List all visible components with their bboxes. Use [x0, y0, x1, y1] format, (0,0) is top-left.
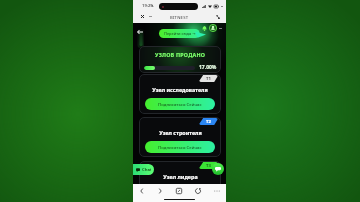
button[interactable]: Перейти сюда → — [159, 29, 200, 38]
staticText: Подписаться Сейчас — [158, 188, 202, 194]
staticText: T3 — [206, 163, 211, 169]
button[interactable]: T1 — [139, 74, 221, 114]
button[interactable]: Подписаться Сейчас — [145, 141, 215, 153]
staticText: Узел исследователя — [152, 86, 208, 93]
button[interactable]: Tabs — [169, 184, 188, 197]
staticText: Перейти сюда → — [164, 31, 196, 36]
staticText: УЗЛОВ ПРОДАНО — [155, 51, 206, 58]
button[interactable]: Back — [134, 26, 145, 37]
staticText: T2 — [206, 119, 211, 125]
button[interactable]: Share — [213, 12, 222, 21]
button[interactable]: Close — [138, 12, 147, 21]
button[interactable]: Back — [146, 12, 155, 21]
button[interactable]: Open chat — [212, 163, 224, 175]
staticText: Chat — [142, 167, 151, 173]
button[interactable]: T2 — [139, 117, 221, 157]
button[interactable]: Forward — [151, 184, 169, 197]
button[interactable]: Profile — [208, 23, 218, 33]
staticText: 19:29 — [142, 3, 153, 9]
button[interactable]: More — [207, 184, 226, 197]
staticText: T1 — [206, 76, 211, 82]
button[interactable]: Подписаться Сейчас — [145, 185, 215, 197]
button[interactable]: Notifications — [200, 24, 209, 33]
staticText: Подписаться Сейчас — [158, 101, 202, 107]
button[interactable]: T3 — [139, 161, 221, 201]
button[interactable]: Reload — [188, 184, 207, 197]
button[interactable]: Back — [133, 184, 151, 197]
button[interactable]: Подписаться Сейчас — [145, 98, 215, 110]
staticText: Узел строителя — [159, 129, 202, 136]
button[interactable]: Chat — [133, 164, 154, 175]
staticText: Подписаться Сейчас — [158, 144, 202, 150]
staticText: 17.00% — [199, 64, 217, 71]
staticText: Узел лидера — [163, 173, 198, 180]
button[interactable]: More options — [217, 25, 223, 31]
button[interactable]: УЗЛОВ ПРОДАНО — [139, 46, 221, 73]
staticText: BITNEST — [170, 15, 189, 21]
